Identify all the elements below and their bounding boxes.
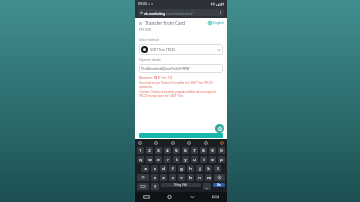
staticText: 6 xyxy=(184,148,187,153)
button[interactable]: 4 xyxy=(164,147,171,154)
button[interactable]: USDT Tron TRC20 xyxy=(141,44,221,55)
button[interactable]: l xyxy=(214,165,221,172)
staticText: d xyxy=(162,166,165,171)
staticText: , xyxy=(206,184,208,189)
button[interactable]: m xyxy=(205,174,212,181)
staticText: ? xyxy=(154,184,156,189)
button[interactable]: English xyxy=(208,21,224,25)
staticText: u xyxy=(193,157,196,162)
staticText: TKsoNhmwGnbXJLhxmPmXoYHYWW xyxy=(141,67,190,71)
button[interactable]: TKsoNhmwGnbXJLhxmPmXoYHYWW xyxy=(141,64,221,73)
button[interactable]: p xyxy=(218,156,225,163)
button[interactable]: Menu xyxy=(138,21,143,26)
staticText: Coinomi, Exodus and other popular wallet… xyxy=(139,90,223,98)
staticText: j xyxy=(199,166,201,171)
staticText: v xyxy=(180,175,183,180)
button[interactable]: Secure connection xyxy=(140,9,222,16)
button[interactable]: q xyxy=(137,156,144,163)
button[interactable]: Symbols xyxy=(137,183,149,190)
button[interactable]: 8 xyxy=(200,147,207,154)
button[interactable]: y xyxy=(182,156,189,163)
button[interactable]: e xyxy=(155,156,162,163)
button[interactable]: ? xyxy=(151,183,159,190)
staticText: Fee: xyxy=(160,76,168,80)
staticText: 10 $ xyxy=(154,76,160,80)
button[interactable]: h xyxy=(187,165,194,172)
staticText: 2 xyxy=(148,148,151,153)
button[interactable]: Theme xyxy=(204,141,208,145)
staticText: /uoo/withdrawal/ xyxy=(166,11,193,15)
staticText: 09:34 xyxy=(138,1,147,6)
button[interactable]: 9 xyxy=(209,147,216,154)
staticText: Transfer from Card xyxy=(145,20,185,26)
button[interactable]: 5 xyxy=(173,147,180,154)
button[interactable]: n xyxy=(196,174,203,181)
staticText: English xyxy=(213,21,224,25)
button[interactable]: d xyxy=(160,165,167,172)
button[interactable]: Back xyxy=(181,192,204,202)
button[interactable]: Chat support xyxy=(215,124,224,133)
staticText: Go xyxy=(217,183,221,187)
button[interactable]: u xyxy=(191,156,198,163)
staticText: p xyxy=(220,157,223,162)
button[interactable]: Clipboard xyxy=(138,141,142,145)
button[interactable]: Tiếng Việt xyxy=(161,183,201,187)
staticText: 1 xyxy=(139,148,142,153)
staticText: e xyxy=(157,157,160,162)
button[interactable]: 6 xyxy=(182,147,189,154)
other: More options xyxy=(219,10,222,15)
staticText: s xyxy=(154,166,156,171)
button[interactable]: 3 xyxy=(155,147,162,154)
button[interactable]: Backspace xyxy=(214,174,225,181)
button[interactable]: , xyxy=(203,183,211,190)
staticText: o xyxy=(211,157,214,162)
button[interactable]: Shift xyxy=(137,174,149,181)
button[interactable]: Sticker xyxy=(154,141,158,145)
button[interactable]: t xyxy=(173,156,180,163)
staticText: h xyxy=(189,166,192,171)
staticText: i xyxy=(203,157,205,162)
button[interactable]: Recents xyxy=(135,192,158,202)
staticText: 4 xyxy=(166,148,169,153)
button[interactable]: b xyxy=(187,174,194,181)
staticText: You need to use Trustee Pro wallet for U… xyxy=(139,81,223,89)
button[interactable]: w xyxy=(146,156,153,163)
button[interactable]: a xyxy=(141,165,149,172)
button[interactable]: 2 xyxy=(146,147,153,154)
staticText: y xyxy=(184,157,187,162)
staticText: Tiếng Việt xyxy=(174,183,188,187)
button[interactable]: 7 xyxy=(191,147,198,154)
staticText: b xyxy=(189,175,192,180)
staticText: t xyxy=(176,157,178,162)
staticText: f xyxy=(172,166,174,171)
button[interactable]: s xyxy=(151,165,158,172)
button[interactable]: g xyxy=(178,165,185,172)
button[interactable]: Hide keyboard xyxy=(204,192,227,202)
button[interactable]: Go xyxy=(213,183,225,187)
button[interactable]: r xyxy=(164,156,171,163)
button[interactable]: z xyxy=(151,174,158,181)
staticText: x xyxy=(162,175,165,180)
staticText: 9 xyxy=(211,148,214,153)
button[interactable]: k xyxy=(205,165,212,172)
button[interactable]: 1 xyxy=(137,147,144,154)
staticText: n xyxy=(198,175,201,180)
button[interactable]: f xyxy=(169,165,176,172)
button[interactable]: c xyxy=(169,174,176,181)
button[interactable] xyxy=(139,133,223,138)
button[interactable]: Voice input xyxy=(171,141,175,145)
button[interactable]: o xyxy=(209,156,216,163)
staticText: 1 $ xyxy=(168,76,172,80)
button[interactable]: Emoji xyxy=(220,141,224,145)
button[interactable]: j xyxy=(196,165,203,172)
button[interactable]: x xyxy=(160,174,167,181)
button[interactable]: i xyxy=(200,156,207,163)
staticText: l xyxy=(217,166,219,171)
button[interactable]: v xyxy=(178,174,185,181)
button[interactable]: 0 xyxy=(218,147,225,154)
staticText: r xyxy=(167,157,169,162)
button[interactable]: Home xyxy=(158,192,181,202)
button[interactable]: Settings xyxy=(187,141,191,145)
other: Secure connection xyxy=(140,11,143,14)
staticText: Payment details xyxy=(139,58,161,62)
